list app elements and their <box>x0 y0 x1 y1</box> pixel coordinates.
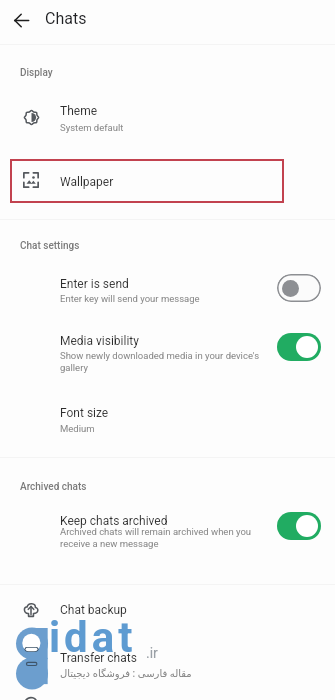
button[interactable]: Back <box>7 6 36 35</box>
staticText: Medium <box>60 423 95 434</box>
button[interactable] <box>0 592 335 625</box>
staticText: Transfer chats <box>60 651 137 665</box>
button[interactable] <box>0 330 335 380</box>
button[interactable] <box>0 508 335 558</box>
staticText: Archived chats will remain archived when… <box>60 526 258 549</box>
staticText: System default <box>60 122 124 133</box>
staticText: Chat backup <box>60 603 127 617</box>
staticText: Chats <box>45 9 87 28</box>
button[interactable]: Toggle on <box>277 512 321 540</box>
button[interactable] <box>0 272 335 312</box>
button[interactable]: Toggle on <box>277 333 321 361</box>
button[interactable] <box>10 159 284 203</box>
staticText: Theme <box>60 104 98 118</box>
staticText: Keep chats archived <box>60 514 168 528</box>
staticText: Font size <box>60 406 109 420</box>
staticText: Chat settings <box>20 240 80 252</box>
staticText: Media visibility <box>60 334 139 348</box>
button[interactable]: Toggle off <box>277 274 321 302</box>
staticText: Enter is send <box>60 277 129 291</box>
staticText: Show newly downloaded media in your devi… <box>60 350 269 373</box>
staticText: idat <box>49 613 137 662</box>
staticText: Display <box>20 67 53 79</box>
button[interactable] <box>0 640 335 673</box>
staticText: Enter key will send your message <box>60 293 200 304</box>
staticText: Wallpaper <box>60 175 114 189</box>
button[interactable] <box>0 100 335 142</box>
staticText: مقاله فارسی : فروشگاه دیجیتال <box>60 666 192 680</box>
button[interactable] <box>0 403 335 443</box>
staticText: Archived chats <box>20 481 87 493</box>
staticText: .ir <box>146 645 158 661</box>
